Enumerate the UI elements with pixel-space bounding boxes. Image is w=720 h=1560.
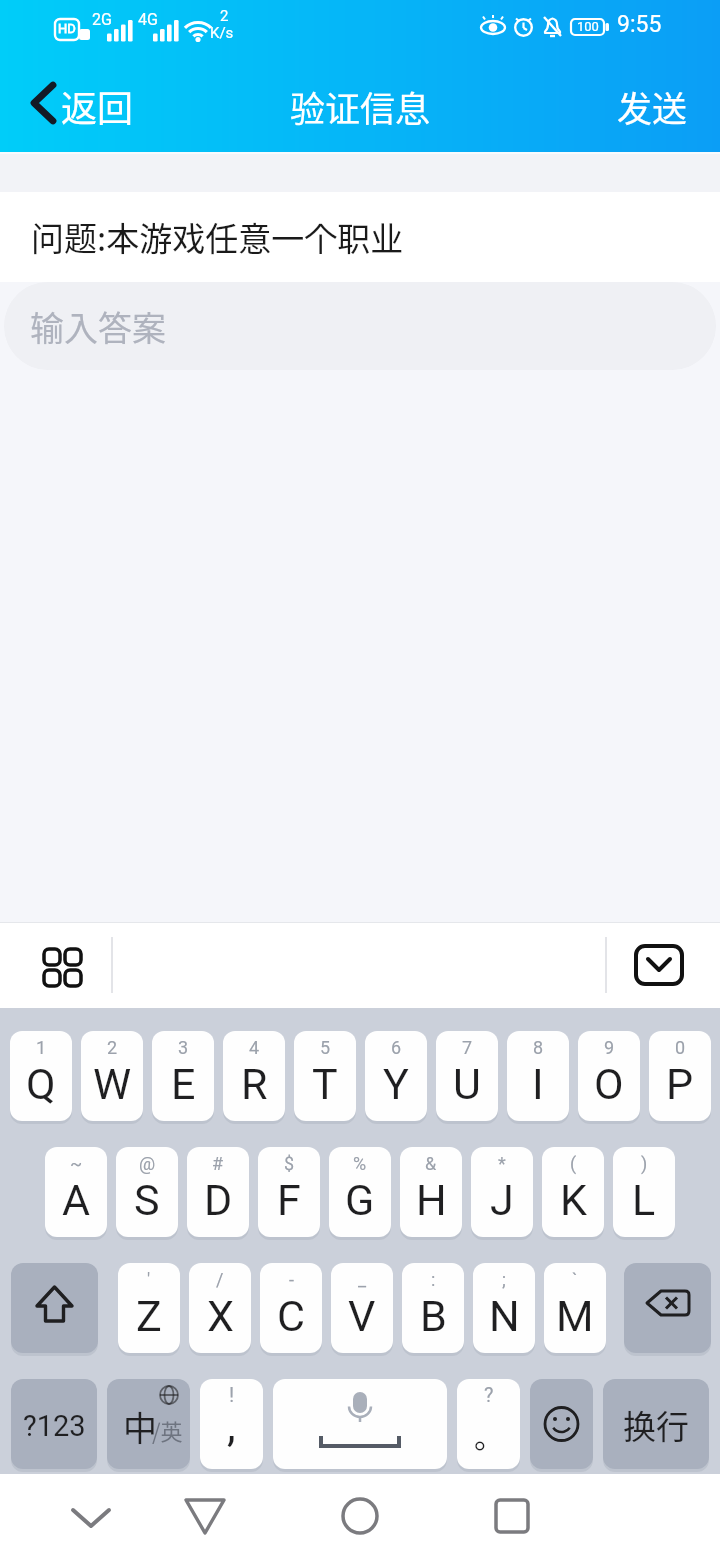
staticText: 中 xyxy=(123,1402,157,1451)
button[interactable] xyxy=(33,942,93,1002)
button[interactable]: 9 xyxy=(578,1031,640,1121)
staticText: ` xyxy=(572,1269,578,1290)
staticText: $ xyxy=(284,1153,295,1174)
staticText: T xyxy=(312,1059,338,1109)
button[interactable]: 5 xyxy=(294,1031,356,1121)
button[interactable] xyxy=(175,1486,235,1546)
button[interactable]: ) xyxy=(613,1147,675,1237)
staticText: 问题:本游戏任意一个职业 xyxy=(31,213,404,261)
staticText: 9:55 xyxy=(617,11,662,38)
staticText: C xyxy=(277,1291,305,1341)
staticText: D xyxy=(204,1175,233,1225)
button[interactable]: _ xyxy=(331,1263,393,1353)
staticText: 发送 xyxy=(617,81,688,132)
staticText: U xyxy=(453,1059,481,1109)
staticText: R xyxy=(241,1059,268,1109)
staticText: K xyxy=(560,1175,587,1225)
button[interactable]: 1 xyxy=(10,1031,72,1121)
staticText: Y xyxy=(383,1059,409,1109)
staticText: 。 xyxy=(474,1413,504,1456)
button[interactable]: ( xyxy=(542,1147,604,1237)
button[interactable]: @ xyxy=(116,1147,178,1237)
staticText: 7 xyxy=(462,1037,473,1058)
staticText: - xyxy=(289,1269,294,1290)
button[interactable] xyxy=(61,1486,121,1546)
staticText: K/s xyxy=(210,24,234,42)
staticText: 4G xyxy=(138,10,158,29)
staticText: N xyxy=(489,1291,520,1341)
button[interactable]: ?123 xyxy=(11,1379,97,1469)
button[interactable]: - xyxy=(260,1263,322,1353)
button[interactable]: 换行 xyxy=(603,1379,709,1469)
staticText: A xyxy=(62,1175,91,1225)
button[interactable] xyxy=(273,1379,447,1469)
staticText: & xyxy=(425,1153,437,1174)
button[interactable]: 中 xyxy=(107,1379,190,1469)
button[interactable]: 返回 xyxy=(20,60,160,152)
button[interactable] xyxy=(630,940,690,990)
button[interactable]: 4 xyxy=(223,1031,285,1121)
staticText: ' xyxy=(147,1269,151,1290)
button[interactable] xyxy=(330,1486,390,1546)
button[interactable]: * xyxy=(471,1147,533,1237)
staticText: 8 xyxy=(533,1037,544,1058)
button[interactable]: & xyxy=(400,1147,462,1237)
staticText: 输入答案 xyxy=(30,302,166,351)
staticText: 4 xyxy=(249,1037,260,1058)
staticText: E xyxy=(171,1059,196,1109)
button[interactable]: / xyxy=(189,1263,251,1353)
staticText: S xyxy=(134,1175,160,1225)
staticText: ?123 xyxy=(23,1409,86,1443)
button[interactable]: 8 xyxy=(507,1031,569,1121)
button[interactable]: 输入答案 xyxy=(4,282,716,370)
button[interactable]: 0 xyxy=(649,1031,711,1121)
staticText: Q xyxy=(26,1059,56,1109)
staticText: ( xyxy=(570,1153,577,1174)
staticText: O xyxy=(594,1059,624,1109)
button[interactable]: : xyxy=(402,1263,464,1353)
button[interactable]: ; xyxy=(473,1263,535,1353)
staticText: % xyxy=(353,1153,367,1174)
button[interactable]: 3 xyxy=(152,1031,214,1121)
staticText: _ xyxy=(358,1269,367,1290)
button[interactable] xyxy=(11,1263,98,1353)
staticText: 验证信息 xyxy=(290,81,431,132)
button[interactable]: 2 xyxy=(81,1031,143,1121)
button[interactable]: $ xyxy=(258,1147,320,1237)
staticText: ! xyxy=(229,1383,235,1406)
staticText: HD xyxy=(58,21,76,36)
staticText: 2G xyxy=(92,10,112,29)
button[interactable]: 7 xyxy=(436,1031,498,1121)
staticText: @ xyxy=(139,1153,156,1174)
staticText: F xyxy=(277,1175,301,1225)
staticText: 0 xyxy=(675,1037,686,1058)
staticText: X xyxy=(207,1291,234,1341)
button[interactable] xyxy=(482,1486,542,1546)
staticText: P xyxy=(666,1059,694,1109)
button[interactable]: ! xyxy=(200,1379,263,1469)
staticText: /英 xyxy=(152,1414,183,1446)
button[interactable]: # xyxy=(187,1147,249,1237)
staticText: : xyxy=(431,1269,436,1290)
staticText: H xyxy=(416,1175,447,1225)
staticText: / xyxy=(216,1269,224,1290)
button[interactable]: 发送 xyxy=(600,60,704,152)
staticText: 100 xyxy=(577,19,599,34)
staticText: ~ xyxy=(70,1153,83,1174)
staticText: 换行 xyxy=(623,1401,689,1449)
button[interactable] xyxy=(624,1263,711,1353)
staticText: 3 xyxy=(178,1037,189,1058)
staticText: G xyxy=(345,1175,375,1225)
button[interactable] xyxy=(530,1379,593,1469)
staticText: * xyxy=(498,1153,506,1174)
staticText: M xyxy=(556,1291,594,1341)
button[interactable]: % xyxy=(329,1147,391,1237)
staticText: 9 xyxy=(604,1037,615,1058)
staticText: # xyxy=(212,1153,224,1174)
button[interactable]: ? xyxy=(457,1379,520,1469)
button[interactable]: ~ xyxy=(45,1147,107,1237)
staticText: 2 xyxy=(107,1037,118,1058)
button[interactable]: ` xyxy=(544,1263,606,1353)
button[interactable]: ' xyxy=(118,1263,180,1353)
button[interactable]: 6 xyxy=(365,1031,427,1121)
